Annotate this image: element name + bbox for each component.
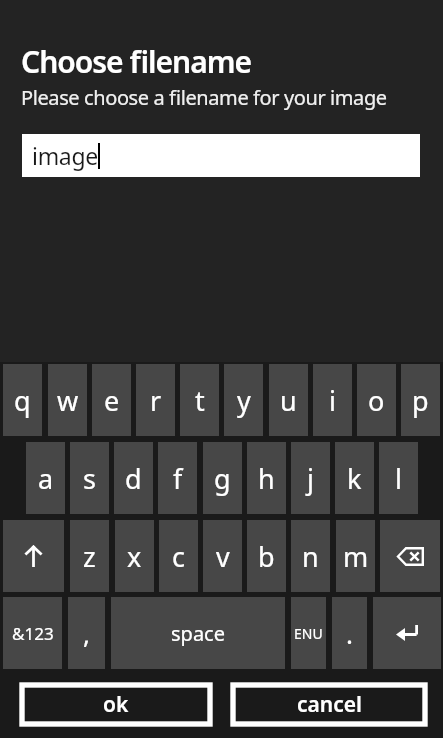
button[interactable]: cancel (233, 685, 425, 724)
staticText: k (347, 460, 362, 497)
staticText: z (83, 538, 96, 575)
button[interactable]: . (332, 597, 367, 669)
button[interactable]: z (70, 520, 109, 592)
button[interactable]: ok (22, 685, 210, 724)
button[interactable]: p (401, 364, 440, 436)
button[interactable]: ENU (291, 597, 326, 669)
staticText: g (214, 460, 231, 497)
staticText: v (216, 538, 230, 575)
button[interactable]: d (114, 442, 153, 514)
staticText: i (329, 382, 336, 419)
staticText: space (171, 620, 225, 647)
button[interactable]: m (336, 520, 375, 592)
button[interactable]: x (115, 520, 154, 592)
staticText: , (83, 616, 90, 651)
staticText: &123 (12, 622, 54, 645)
staticText: Choose filename (21, 41, 252, 82)
button[interactable]: &123 (3, 597, 62, 669)
staticText: c (172, 538, 185, 575)
button[interactable] (3, 520, 64, 592)
staticText: p (412, 382, 429, 419)
staticText: r (150, 382, 162, 419)
button[interactable]: f (158, 442, 197, 514)
staticText: o (368, 382, 385, 419)
button[interactable]: c (159, 520, 198, 592)
button[interactable]: , (68, 597, 105, 669)
button[interactable]: h (247, 442, 286, 514)
staticText: image (32, 140, 98, 171)
staticText: ENU (294, 624, 323, 643)
staticText: j (307, 460, 314, 497)
button[interactable] (373, 597, 441, 669)
button[interactable]: b (247, 520, 286, 592)
staticText: w (57, 382, 79, 419)
button[interactable]: t (180, 364, 219, 436)
staticText: e (104, 382, 120, 419)
staticText: h (258, 460, 275, 497)
staticText: b (258, 538, 275, 575)
staticText: n (302, 538, 319, 575)
button[interactable]: k (335, 442, 374, 514)
button[interactable]: n (291, 520, 330, 592)
staticText: s (83, 460, 96, 497)
button[interactable]: i (313, 364, 352, 436)
button[interactable]: space (111, 597, 285, 669)
button[interactable]: image (22, 134, 420, 177)
staticText: f (173, 460, 183, 497)
button[interactable]: r (136, 364, 175, 436)
button[interactable]: j (291, 442, 330, 514)
staticText: l (395, 460, 402, 497)
button[interactable]: v (203, 520, 242, 592)
staticText: m (343, 538, 369, 575)
button[interactable]: g (203, 442, 242, 514)
button[interactable]: l (379, 442, 418, 514)
button[interactable]: q (3, 364, 42, 436)
button[interactable]: s (70, 442, 109, 514)
staticText: u (280, 382, 297, 419)
staticText: d (125, 460, 142, 497)
staticText: a (38, 460, 54, 497)
staticText: . (346, 616, 353, 651)
button[interactable] (380, 520, 440, 592)
button[interactable]: o (357, 364, 396, 436)
staticText: ok (103, 690, 129, 719)
button[interactable]: a (26, 442, 65, 514)
button[interactable]: u (269, 364, 308, 436)
staticText: x (127, 538, 142, 575)
button[interactable]: y (224, 364, 263, 436)
button[interactable]: w (48, 364, 87, 436)
staticText: q (14, 382, 31, 419)
staticText: t (195, 382, 205, 419)
staticText: cancel (297, 690, 362, 719)
staticText: y (237, 382, 251, 419)
button[interactable]: e (92, 364, 131, 436)
staticText: Please choose a filename for your image (21, 84, 387, 111)
